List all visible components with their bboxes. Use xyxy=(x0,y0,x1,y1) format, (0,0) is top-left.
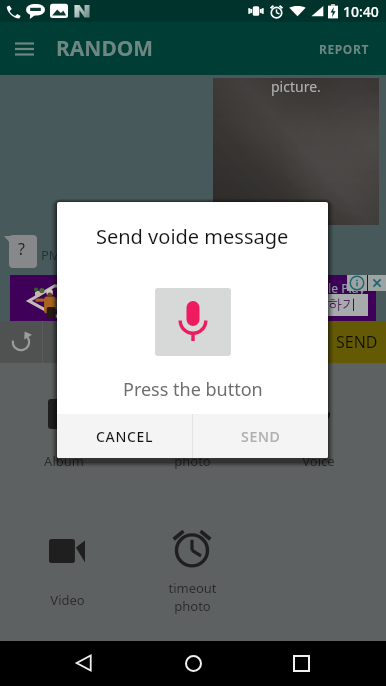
button[interactable] xyxy=(144,523,240,589)
button[interactable]: Record voice message xyxy=(155,288,231,356)
staticText: CANCEL xyxy=(96,427,154,446)
button[interactable]: Menu xyxy=(0,25,48,73)
staticText: Video xyxy=(50,591,85,609)
button[interactable]: le Play xyxy=(10,275,376,322)
staticText: photo xyxy=(174,452,211,470)
staticText: Album xyxy=(44,452,84,470)
button[interactable]: Refresh xyxy=(0,321,42,363)
staticText: Voice xyxy=(302,452,335,470)
staticText: picture. xyxy=(271,77,321,96)
button[interactable] xyxy=(270,389,366,455)
staticText: le Play xyxy=(328,280,366,296)
staticText: Press the button xyxy=(123,377,263,402)
staticText: 하기 xyxy=(328,296,356,314)
button[interactable]: SEND xyxy=(193,414,328,458)
button[interactable]: Home xyxy=(171,641,215,685)
button[interactable] xyxy=(19,526,115,592)
button[interactable] xyxy=(144,389,240,455)
staticText: REPORT xyxy=(319,41,369,57)
staticText: SEND xyxy=(336,331,378,353)
staticText: timeout photo xyxy=(168,579,217,615)
staticText: 10:40 xyxy=(343,2,379,21)
button[interactable]: CANCEL xyxy=(57,414,192,458)
staticText: RANDOM xyxy=(56,34,154,63)
button[interactable] xyxy=(16,389,112,455)
staticText: ? xyxy=(18,238,25,260)
staticText: Send voide message xyxy=(96,223,289,250)
staticText: PM xyxy=(41,246,61,264)
button[interactable]: Back xyxy=(62,641,106,685)
button[interactable]: REPORT xyxy=(303,29,386,69)
staticText: SEND xyxy=(241,427,281,446)
button[interactable]: Recents xyxy=(279,641,323,685)
button[interactable]: SEND xyxy=(328,321,386,363)
